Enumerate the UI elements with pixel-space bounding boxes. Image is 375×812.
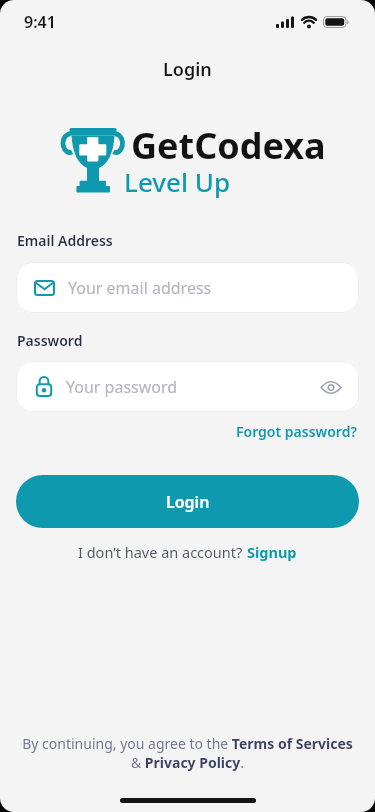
staticText: Login [166, 491, 210, 513]
staticText: Password [17, 331, 83, 350]
staticText: Login [163, 57, 212, 82]
staticText: I don’t have an account? [78, 542, 247, 562]
staticText: By continuing, you agree to the Terms of… [0, 734, 375, 772]
staticText: GetCodexa [131, 121, 326, 170]
button[interactable] [311, 367, 351, 407]
button[interactable]: Login [16, 475, 359, 528]
button[interactable]: Your password [16, 361, 359, 412]
staticText: 9:41 [24, 11, 56, 33]
button[interactable]: Your email address [16, 262, 359, 313]
staticText: Your password [66, 376, 178, 398]
staticText: Email Address [17, 231, 113, 250]
button[interactable]: Signup [247, 542, 297, 562]
staticText: Your email address [68, 277, 212, 299]
button[interactable]: Forgot password? [236, 422, 357, 441]
staticText: Level Up [124, 164, 231, 199]
